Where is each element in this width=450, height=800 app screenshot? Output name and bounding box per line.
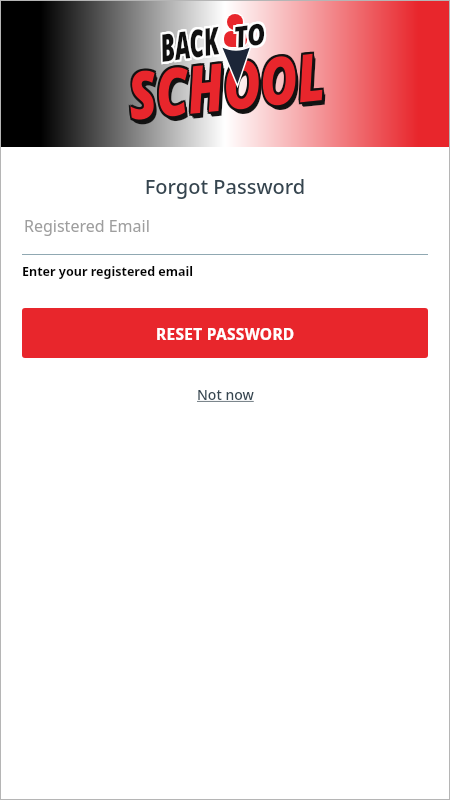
staticText: SCHOOL bbox=[124, 30, 328, 140]
staticText: TO bbox=[231, 13, 268, 56]
staticText: SCHOOL bbox=[124, 31, 328, 141]
staticText: BACK bbox=[156, 11, 222, 71]
staticText: BACK bbox=[156, 15, 222, 75]
staticText: SCHOOL bbox=[125, 33, 329, 143]
staticText: SCHOOL bbox=[124, 31, 328, 141]
staticText: TO bbox=[231, 15, 268, 58]
staticText: BACK bbox=[158, 15, 224, 75]
staticText: TO bbox=[229, 13, 266, 56]
button[interactable]: Registered Email bbox=[22, 210, 428, 255]
staticText: BACK bbox=[155, 13, 221, 73]
staticText: TO bbox=[233, 15, 270, 58]
staticText: TO bbox=[233, 11, 269, 54]
staticText: SCHOOL bbox=[126, 34, 330, 144]
staticText: BACK bbox=[157, 11, 223, 71]
staticText: SCHOOL bbox=[125, 32, 329, 142]
staticText: Registered Email bbox=[24, 215, 150, 237]
staticText: SCHOOL bbox=[125, 31, 329, 141]
staticText: SCHOOL bbox=[125, 27, 329, 137]
staticText: Not now bbox=[197, 385, 254, 404]
button[interactable]: RESET PASSWORD bbox=[22, 308, 428, 358]
staticText: BACK bbox=[155, 11, 221, 71]
staticText: TO bbox=[231, 11, 267, 54]
staticText: RESET PASSWORD bbox=[156, 323, 295, 344]
button[interactable]: Not now bbox=[191, 383, 260, 406]
staticText: TO bbox=[229, 11, 266, 54]
staticText: SCHOOL bbox=[123, 27, 327, 137]
staticText: Enter your registered email bbox=[22, 263, 193, 280]
staticText: SCHOOL bbox=[122, 31, 326, 141]
staticText: SCHOOL bbox=[125, 29, 329, 139]
staticText: TO bbox=[233, 13, 269, 56]
staticText: BACK bbox=[158, 13, 224, 73]
staticText: SCHOOL bbox=[122, 27, 326, 137]
staticText: SCHOOL bbox=[122, 29, 326, 139]
staticText: BACK bbox=[156, 13, 223, 73]
staticText: SCHOOL bbox=[123, 29, 327, 139]
staticText: Forgot Password bbox=[0, 173, 450, 200]
staticText: BACK bbox=[157, 15, 223, 75]
staticText: TO bbox=[230, 15, 266, 58]
